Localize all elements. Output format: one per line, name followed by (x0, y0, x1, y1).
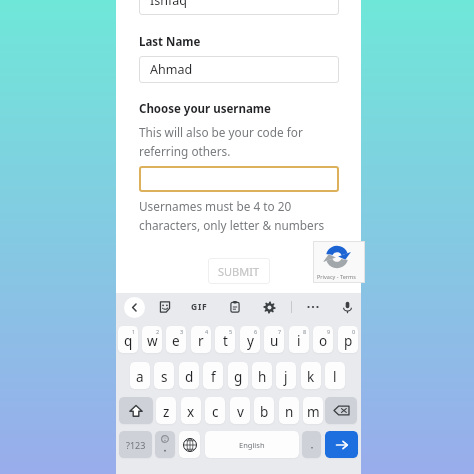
staticText: r (198, 332, 204, 350)
staticText: 5 (229, 328, 233, 335)
staticText: English (239, 440, 265, 450)
staticText: 4 (205, 328, 209, 335)
staticText: b (260, 403, 269, 421)
button[interactable]: SUBMIT (208, 258, 270, 284)
button[interactable]: Shift (119, 397, 153, 424)
staticText: k (307, 368, 315, 386)
staticText: Choose your username (139, 101, 271, 117)
button[interactable]: Backspace (325, 397, 357, 424)
staticText: t (223, 332, 228, 350)
staticText: v (237, 403, 244, 421)
button[interactable]: 7 (264, 326, 284, 353)
button[interactable]: l (325, 362, 345, 389)
button[interactable]: n (279, 397, 299, 424)
staticText: x (187, 403, 195, 421)
staticText: n (285, 403, 294, 421)
button[interactable]: Symbols (119, 431, 152, 458)
staticText: characters, only letter & numbers (139, 217, 325, 233)
staticText: GIF (191, 301, 208, 313)
button[interactable]: s (154, 362, 174, 389)
button[interactable]: 0 (338, 326, 358, 353)
staticText: 9 (327, 328, 331, 335)
button[interactable]: 1 (118, 326, 138, 353)
button[interactable]: 9 (313, 326, 333, 353)
button[interactable]: 6 (240, 326, 260, 353)
button[interactable]: x (181, 397, 201, 424)
button[interactable]: j (276, 362, 296, 389)
staticText: e (172, 332, 180, 350)
button[interactable]: 4 (191, 326, 211, 353)
staticText: 0 (352, 328, 356, 335)
button[interactable]: k (301, 362, 321, 389)
staticText: Last Name (139, 34, 201, 50)
staticText: h (258, 368, 267, 386)
staticText: 1 (132, 328, 136, 335)
button[interactable]: Emoji (155, 431, 175, 458)
staticText: i (297, 332, 301, 350)
staticText: c (212, 403, 219, 421)
button[interactable]: Change language (179, 431, 200, 458)
staticText: g (234, 368, 243, 386)
staticText: SUBMIT (218, 264, 260, 279)
button[interactable]: Stickers (156, 298, 174, 316)
button[interactable]: c (205, 397, 225, 424)
staticText: 7 (278, 328, 282, 335)
staticText: Ishfaq (150, 0, 187, 9)
button[interactable]: f (203, 362, 223, 389)
button[interactable]: 8 (289, 326, 309, 353)
button[interactable]: g (228, 362, 248, 389)
button[interactable]: 2 (142, 326, 162, 353)
button[interactable]: Voice input (338, 298, 356, 316)
button[interactable]: 3 (166, 326, 186, 353)
button[interactable]: Back (124, 297, 145, 318)
button[interactable]: h (252, 362, 272, 389)
staticText: 2 (156, 328, 160, 335)
button[interactable]: More options (305, 300, 321, 314)
staticText: w (147, 332, 158, 350)
button[interactable]: v (230, 397, 250, 424)
staticText: j (284, 368, 288, 386)
button[interactable]: Ishfaq (139, 0, 339, 15)
staticText: u (270, 332, 279, 350)
staticText: q (124, 332, 133, 350)
staticText: a (136, 368, 144, 386)
staticText: ?123 (126, 439, 146, 451)
staticText: 6 (254, 328, 258, 335)
button[interactable]: Ahmad (139, 56, 339, 83)
button[interactable]: Period (302, 431, 321, 458)
staticText: d (185, 368, 194, 386)
button[interactable]: d (179, 362, 199, 389)
button[interactable]: m (303, 397, 323, 424)
staticText: l (333, 368, 337, 386)
button[interactable]: GIF (190, 300, 209, 314)
button[interactable]: Settings (260, 298, 278, 316)
button[interactable]: reCAPTCHA Privacy Terms (313, 241, 365, 283)
staticText: referring others. (139, 143, 231, 159)
staticText: s (161, 368, 168, 386)
button[interactable]: a (130, 362, 150, 389)
button[interactable]: Clipboard (226, 298, 244, 316)
button[interactable]: b (254, 397, 274, 424)
staticText: 8 (303, 328, 307, 335)
staticText: 3 (180, 328, 184, 335)
staticText: o (319, 332, 328, 350)
button[interactable]: Enter (325, 431, 358, 458)
staticText: z (163, 403, 170, 421)
staticText: This will also be your code for (139, 124, 303, 140)
staticText: Privacy - Terms (317, 273, 356, 280)
button[interactable]: 5 (215, 326, 235, 353)
button[interactable] (139, 166, 339, 192)
button[interactable]: Space (205, 431, 299, 458)
staticText: Ahmad (150, 61, 193, 78)
staticText: p (344, 332, 353, 350)
staticText: f (211, 368, 216, 386)
staticText: y (247, 332, 254, 350)
button[interactable]: z (156, 397, 176, 424)
staticText: Usernames must be 4 to 20 (139, 198, 292, 214)
staticText: m (307, 403, 320, 421)
